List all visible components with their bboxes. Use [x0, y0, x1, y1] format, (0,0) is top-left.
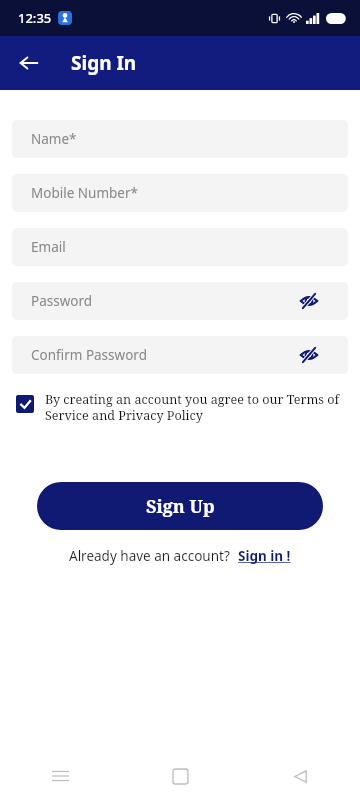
staticText: By creating an account you agree to our …: [45, 391, 348, 423]
button[interactable]: Password: [12, 282, 348, 320]
button[interactable]: Email: [12, 228, 348, 266]
button[interactable]: Back: [278, 754, 322, 798]
staticText: Name*: [31, 130, 77, 148]
staticText: 12:35: [18, 9, 52, 27]
button[interactable]: Recent apps: [38, 754, 82, 798]
button[interactable]: By creating an account you agree to our …: [16, 391, 348, 423]
button[interactable]: Toggle password visibility: [297, 289, 321, 313]
staticText: Mobile Number*: [31, 184, 138, 202]
button[interactable]: Toggle password visibility: [297, 343, 321, 367]
staticText: Sign In: [71, 50, 137, 76]
staticText: Password: [31, 292, 93, 310]
staticText: Already have an account?: [69, 547, 230, 565]
button[interactable]: Name*: [12, 120, 348, 158]
staticText: Confirm Password: [31, 346, 147, 364]
button[interactable]: Confirm Password: [12, 336, 348, 374]
button[interactable]: Back: [10, 44, 48, 82]
staticText: Sign Up: [146, 494, 215, 519]
staticText: Email: [31, 238, 66, 256]
button[interactable]: Home: [158, 754, 202, 798]
button[interactable]: Sign Up: [37, 482, 323, 530]
button[interactable]: Sign in !: [238, 547, 291, 565]
button[interactable]: Mobile Number*: [12, 174, 348, 212]
staticText: Sign in !: [238, 547, 291, 565]
